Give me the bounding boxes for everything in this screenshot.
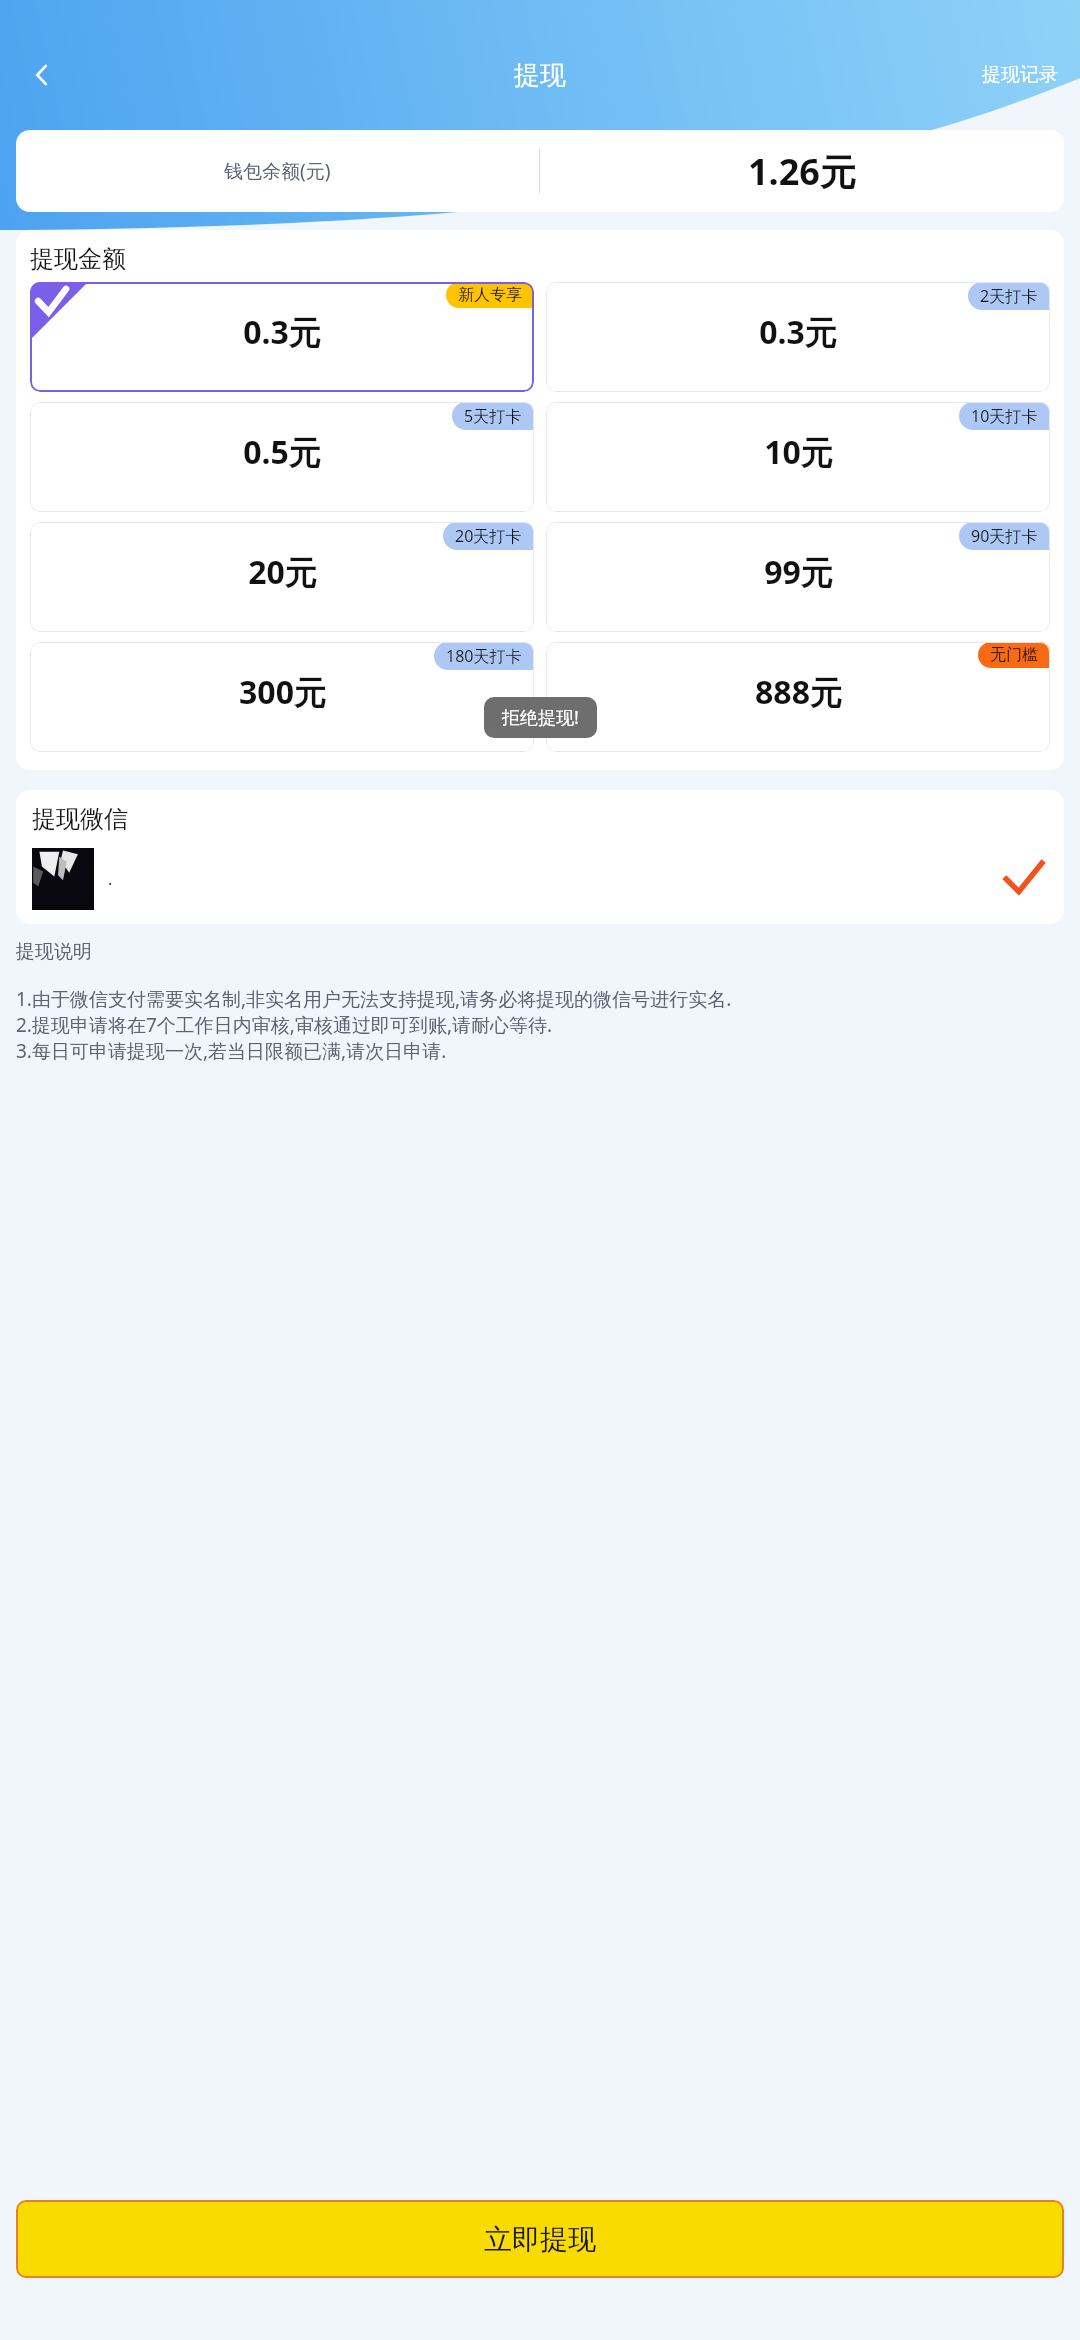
staticText: 300元: [239, 670, 326, 714]
staticText: 无门槛: [990, 645, 1038, 665]
button[interactable]: 拒绝提现!: [484, 697, 597, 738]
staticText: 0.3元: [243, 310, 321, 354]
staticText: 立即提现: [484, 2222, 596, 2257]
staticText: 2天打卡: [980, 285, 1038, 307]
staticText: 90天打卡: [971, 525, 1038, 547]
staticText: 提现金额: [30, 244, 126, 274]
button[interactable]: Back: [14, 47, 70, 103]
staticText: 新人专享: [458, 285, 522, 305]
staticText: 钱包余额(元): [224, 158, 331, 184]
staticText: 888元: [755, 670, 842, 714]
staticText: 20天打卡: [455, 525, 522, 547]
button[interactable]: 立即提现: [16, 2200, 1064, 2278]
button[interactable]: 10天打卡: [546, 402, 1050, 512]
staticText: 99元: [764, 550, 833, 594]
staticText: 2.提现申请将在7个工作日内审核,审核通过即可到账,请耐心等待.: [16, 1012, 553, 1038]
staticText: 180天打卡: [446, 645, 522, 667]
button[interactable]: 20天打卡: [30, 522, 534, 632]
button[interactable]: 180天打卡: [30, 642, 534, 752]
button[interactable]: 提现记录: [976, 57, 1064, 93]
staticText: 拒绝提现!: [502, 705, 579, 730]
staticText: 5天打卡: [464, 405, 522, 427]
staticText: 20元: [248, 550, 317, 594]
staticText: 1.26元: [748, 147, 856, 196]
button[interactable]: 新人专享: [30, 282, 534, 392]
staticText: 提现说明: [16, 940, 92, 964]
button[interactable]: 90天打卡: [546, 522, 1050, 632]
button[interactable]: 无门槛: [546, 642, 1050, 752]
staticText: 10元: [764, 430, 833, 474]
staticText: .: [108, 868, 113, 890]
staticText: 1.由于微信支付需要实名制,非实名用户无法支持提现,请务必将提现的微信号进行实名…: [16, 986, 732, 1012]
button[interactable]: 提现微信: [16, 790, 1064, 924]
button[interactable]: 2天打卡: [546, 282, 1050, 392]
staticText: 提现记录: [982, 63, 1058, 87]
staticText: 3.每日可申请提现一次,若当日限额已满,请次日申请.: [16, 1038, 447, 1064]
staticText: 提现: [514, 59, 566, 92]
staticText: 0.3元: [759, 310, 837, 354]
staticText: 提现微信: [32, 804, 128, 834]
button[interactable]: 5天打卡: [30, 402, 534, 512]
button[interactable]: 钱包余额(元): [16, 130, 1064, 212]
staticText: 0.5元: [243, 430, 321, 474]
staticText: 10天打卡: [971, 405, 1038, 427]
